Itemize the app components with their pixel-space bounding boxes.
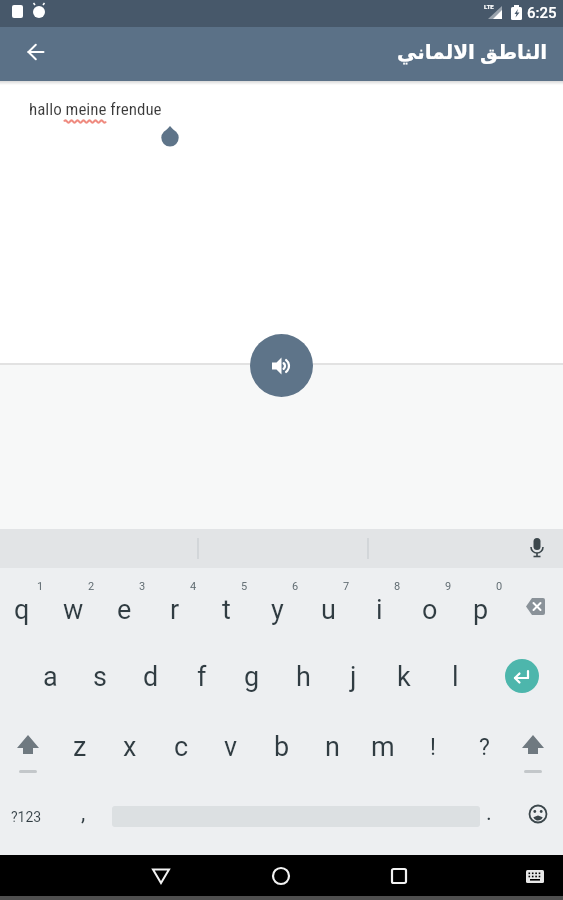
button[interactable]: f [177, 657, 227, 697]
button[interactable]: z [55, 727, 105, 767]
staticText: 6:25 [527, 4, 557, 22]
button[interactable]: i [354, 590, 404, 630]
button[interactable]: w [48, 590, 98, 630]
button[interactable]: ?123 [3, 797, 49, 837]
staticText: y [271, 594, 284, 626]
button[interactable] [515, 857, 555, 895]
button[interactable]: ? [459, 727, 509, 767]
staticText: 4 [190, 580, 197, 593]
button[interactable] [6, 727, 50, 775]
button[interactable] [524, 535, 550, 561]
staticText: e [117, 594, 132, 626]
staticText: l [452, 661, 459, 693]
staticText: 6 [292, 580, 299, 593]
button[interactable] [137, 855, 185, 896]
button[interactable] [511, 727, 555, 775]
staticText: j [350, 661, 357, 693]
staticText: n [325, 731, 340, 763]
button[interactable]: r [150, 590, 200, 630]
staticText: k [397, 661, 411, 693]
staticText: q [14, 594, 30, 626]
staticText: u [321, 594, 336, 626]
staticText: m [371, 731, 395, 763]
staticText: h [296, 661, 311, 693]
button[interactable]: q [0, 590, 47, 630]
button[interactable]: j [328, 657, 378, 697]
button[interactable]: d [126, 657, 176, 697]
staticText: 3 [139, 580, 146, 593]
staticText: ! [430, 734, 436, 761]
button[interactable] [257, 855, 305, 896]
staticText: ? [479, 734, 490, 761]
staticText: s [93, 661, 107, 693]
button[interactable]: o [405, 590, 455, 630]
staticText: r [170, 594, 180, 626]
staticText: 1 [37, 580, 44, 593]
staticText: b [274, 731, 290, 763]
staticText: c [174, 731, 189, 763]
staticText: hallo meine frendue [29, 99, 162, 119]
button[interactable]: t [201, 590, 251, 630]
staticText: f [197, 661, 207, 693]
staticText: g [244, 661, 260, 693]
button[interactable]: m [358, 727, 408, 767]
button[interactable] [18, 41, 54, 63]
staticText: 9 [445, 580, 452, 593]
staticText: ?123 [11, 809, 42, 825]
staticText: a [43, 661, 58, 693]
button[interactable]: p [456, 590, 506, 630]
staticText: d [143, 661, 159, 693]
staticText: x [123, 731, 137, 763]
button[interactable]: u [303, 590, 353, 630]
button[interactable]: k [379, 657, 429, 697]
button[interactable]: n [307, 727, 357, 767]
button[interactable]: y [252, 590, 302, 630]
staticText: 8 [394, 580, 401, 593]
button[interactable]: x [105, 727, 155, 767]
button[interactable]: a [25, 657, 75, 697]
button[interactable] [518, 797, 558, 837]
button[interactable]: e [99, 590, 149, 630]
button[interactable]: b [257, 727, 307, 767]
button[interactable] [505, 659, 539, 693]
button[interactable]: h [278, 657, 328, 697]
staticText: . [486, 800, 492, 826]
button[interactable]: g [227, 657, 277, 697]
staticText: الناطق الالماني [397, 38, 548, 65]
staticText: w [63, 594, 84, 626]
button[interactable] [512, 588, 556, 628]
staticText: , [81, 800, 86, 826]
button[interactable] [250, 334, 313, 397]
button[interactable]: l [430, 657, 480, 697]
staticText: 0 [496, 580, 503, 593]
staticText: 5 [241, 580, 248, 593]
staticText: i [376, 594, 383, 626]
button[interactable]: s [75, 657, 125, 697]
button[interactable]: , [58, 793, 108, 833]
staticText: o [422, 594, 438, 626]
button[interactable]: . [464, 793, 514, 833]
button[interactable] [375, 855, 423, 896]
staticText: 2 [88, 580, 95, 593]
staticText: 7 [343, 580, 350, 593]
button[interactable]: c [156, 727, 206, 767]
button[interactable]: v [206, 727, 256, 767]
button[interactable]: ! [408, 727, 458, 767]
staticText: t [222, 594, 231, 626]
staticText: v [224, 731, 238, 763]
staticText: z [73, 731, 87, 763]
staticText: LTE [484, 3, 494, 10]
staticText: p [473, 594, 489, 626]
